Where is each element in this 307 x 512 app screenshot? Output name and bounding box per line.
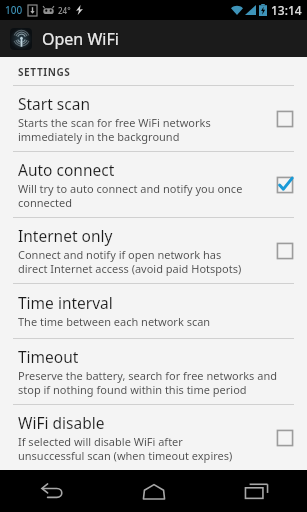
staticText: If selected will disable WiFi after unsu… [18,434,233,463]
staticText: Preserve the battery, search for free ne… [18,368,277,397]
button[interactable]: WiFi disable [0,405,307,468]
staticText: The time between each network scan [18,314,211,329]
staticText: SETTINGS [18,65,71,79]
staticText: Open WiFi [42,28,119,50]
button[interactable]: Time interval [0,284,307,339]
button[interactable]: Auto connect [0,152,307,218]
button[interactable]: Back [0,470,103,512]
staticText: 24° [58,5,71,16]
button[interactable]: Start scan [0,86,307,152]
button[interactable]: Internet only [0,218,307,284]
staticText: Start scan [18,93,90,114]
staticText: 100 [5,3,23,17]
staticText: Time interval [18,292,113,313]
button[interactable]: Timeout [0,339,307,405]
staticText: Auto connect [18,159,115,180]
staticText: Timeout [18,346,79,367]
staticText: Internet only [18,225,113,246]
button[interactable]: Recent apps [205,470,307,512]
button[interactable]: Home [103,470,205,512]
staticText: WiFi disable [18,412,105,433]
staticText: Starts the scan for free WiFi networks i… [18,115,211,144]
staticText: Will try to auto connect and notify you … [18,181,243,210]
staticText: Connect and notify if open network has d… [18,247,242,276]
staticText: 13:14 [271,2,302,18]
